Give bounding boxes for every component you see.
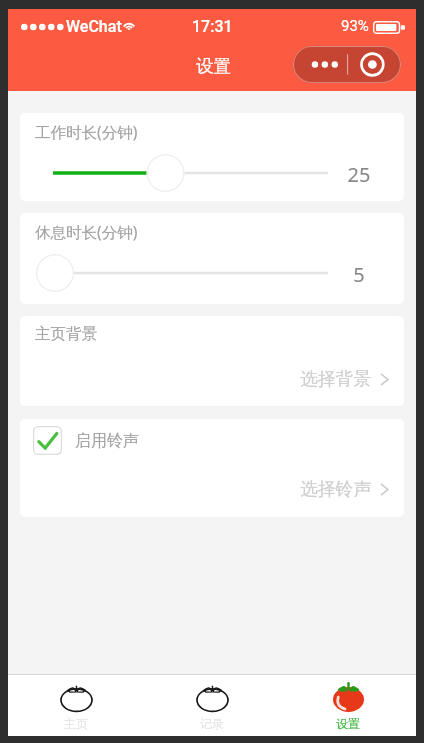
staticText: 设置	[196, 55, 231, 77]
button[interactable]: 设置	[280, 675, 416, 736]
button[interactable]	[36, 252, 368, 294]
button[interactable]: 选择铃声	[300, 478, 389, 500]
staticText: 休息时长(分钟)	[35, 221, 138, 242]
button[interactable]	[36, 152, 368, 194]
staticText: 选择背景	[300, 368, 372, 390]
staticText: 25	[314, 161, 404, 188]
button[interactable]: 记录	[144, 675, 280, 736]
staticText: 记录	[200, 716, 224, 731]
button[interactable]: 启用铃声	[33, 426, 139, 455]
staticText: 主页	[64, 716, 88, 731]
staticText: 启用铃声	[75, 431, 139, 451]
button[interactable]: 选择背景	[300, 368, 389, 390]
button[interactable]: 主页	[8, 675, 144, 736]
staticText: 5	[314, 261, 404, 288]
staticText: WeChat	[66, 17, 122, 36]
staticText: 设置	[336, 716, 360, 731]
staticText: 主页背景	[35, 324, 97, 344]
button[interactable]: More options and close mini program	[293, 46, 401, 83]
staticText: 工作时长(分钟)	[35, 121, 138, 142]
staticText: 93%	[341, 17, 369, 35]
staticText: 17:31	[192, 17, 233, 36]
staticText: 选择铃声	[300, 478, 372, 500]
